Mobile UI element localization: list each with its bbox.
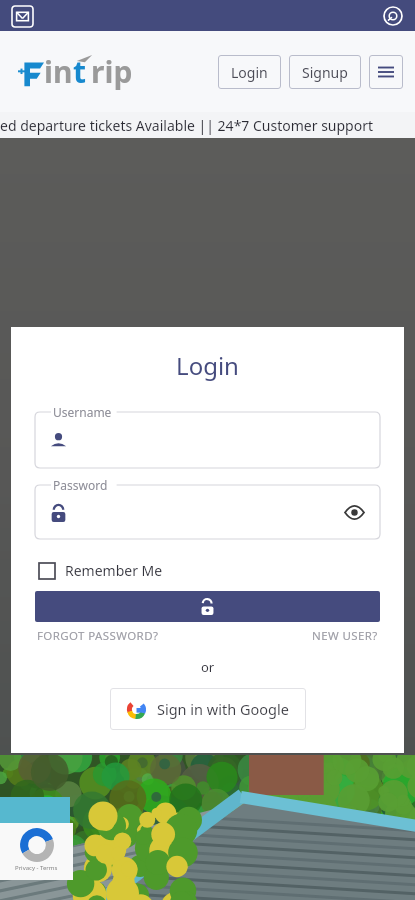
button[interactable]: FORGOT PASSWORD? — [37, 628, 159, 644]
button[interactable]: WhatsApp — [381, 4, 405, 28]
staticText: Login — [11, 349, 404, 382]
button[interactable]: Remember Me — [39, 561, 163, 580]
staticText: t — [73, 51, 87, 92]
button[interactable]: Email — [10, 4, 34, 28]
staticText: or — [11, 658, 404, 676]
staticText: Remember Me — [65, 561, 163, 580]
button[interactable]: Signup — [289, 55, 361, 89]
staticText: in — [44, 51, 73, 92]
button[interactable]: Sign in with Google — [110, 688, 306, 730]
button[interactable]: Login — [35, 591, 380, 622]
staticText: Password — [53, 477, 108, 493]
staticText: rip — [91, 51, 133, 92]
staticText: Sign in with Google — [157, 699, 289, 719]
staticText: Signup — [302, 63, 348, 82]
button[interactable]: Show password — [342, 500, 366, 524]
staticText: ed departure tickets Available || 24*7 C… — [0, 116, 415, 135]
button[interactable]: Privacy - Terms — [0, 823, 73, 880]
button[interactable]: Menu — [369, 55, 403, 89]
staticText: Login — [231, 63, 268, 82]
button[interactable]: NEW USER? — [312, 628, 378, 644]
staticText: Username — [53, 404, 112, 420]
button[interactable]: Login — [218, 55, 281, 89]
staticText: Privacy - Terms — [15, 864, 58, 872]
